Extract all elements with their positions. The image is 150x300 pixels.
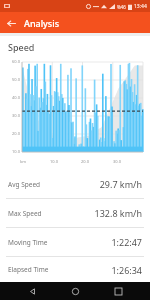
button[interactable]: Moving Time [0,228,150,256]
staticText: %46 [117,4,126,10]
staticText: 30.0 [113,159,121,164]
staticText: 40.0 [12,95,20,100]
staticText: 1:22:47 [111,236,142,248]
staticText: Speed [8,41,35,53]
staticText: 30.0 [12,113,20,118]
staticText: 10.0 [50,159,58,164]
button[interactable]: Back [21,282,43,300]
staticText: 10.0 [12,149,20,154]
button[interactable]: Recent apps [107,282,129,300]
staticText: 29.7 km/h [99,178,142,190]
staticText: Max Speed [8,209,42,218]
button[interactable]: Max Speed [0,199,150,227]
button[interactable]: Avg Speed [0,170,150,198]
staticText: 1:26:34 [111,264,142,276]
button[interactable]: Home [64,282,86,300]
button[interactable]: Elapsed Time [0,257,150,282]
staticText: 132.8 km/h [94,207,142,219]
staticText: 20.0 [81,159,89,164]
staticText: 13:44 [134,3,147,10]
staticText: Avg Speed [8,180,41,189]
staticText: 20.0 [12,131,20,136]
staticText: 60.0 [12,59,20,64]
staticText: km [20,159,26,164]
staticText: Moving Time [8,238,48,247]
staticText: 50.0 [12,77,20,82]
button[interactable]: Back [3,15,19,31]
staticText: Analysis [24,17,60,29]
staticText: Elapsed Time [8,265,49,274]
